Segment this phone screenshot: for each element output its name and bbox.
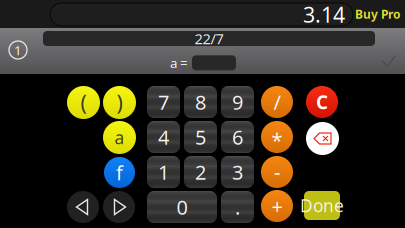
button[interactable]: ( xyxy=(67,86,100,119)
staticText: * xyxy=(271,127,282,153)
staticText: + xyxy=(271,193,282,219)
staticText: 8 xyxy=(195,89,206,115)
staticText: 7 xyxy=(158,89,169,115)
staticText: 3 xyxy=(232,159,243,185)
button[interactable]: C xyxy=(306,86,338,118)
staticText: / xyxy=(273,89,280,115)
staticText: . xyxy=(235,194,240,220)
button[interactable]: 0 xyxy=(147,191,217,223)
staticText: 9 xyxy=(232,89,243,115)
button[interactable] xyxy=(192,55,236,70)
button[interactable]: * xyxy=(261,121,293,153)
staticText: ) xyxy=(116,88,122,117)
staticText: 2 xyxy=(195,159,206,185)
button[interactable]: 5 xyxy=(184,121,217,153)
staticText: 0 xyxy=(176,194,187,220)
button[interactable]: + xyxy=(261,190,293,222)
staticText: 4 xyxy=(158,124,169,150)
button[interactable]: Move right xyxy=(103,191,135,223)
button[interactable]: 1 xyxy=(9,41,27,59)
button[interactable]: Move left xyxy=(67,191,99,223)
button[interactable]: Delete xyxy=(306,122,339,155)
staticText: Done xyxy=(300,194,344,217)
button[interactable]: 7 xyxy=(147,86,180,118)
staticText: 5 xyxy=(195,124,206,150)
staticText: - xyxy=(274,159,280,185)
button[interactable]: - xyxy=(261,156,293,188)
staticText: 22/7 xyxy=(194,29,223,48)
button[interactable]: 1 xyxy=(147,156,180,188)
button[interactable]: f xyxy=(104,157,135,188)
button[interactable]: ) xyxy=(103,86,136,119)
button[interactable]: a xyxy=(103,121,136,154)
button[interactable]: Buy Pro xyxy=(354,0,402,28)
button[interactable]: Done xyxy=(304,191,340,220)
staticText: 1 xyxy=(14,41,22,59)
button[interactable]: Confirm xyxy=(376,48,402,74)
button[interactable]: 4 xyxy=(147,121,180,153)
button[interactable]: 22/7 xyxy=(43,31,375,46)
button[interactable]: 6 xyxy=(221,121,254,153)
staticText: 6 xyxy=(232,124,243,150)
button[interactable]: 3 xyxy=(221,156,254,188)
button[interactable]: / xyxy=(261,86,293,118)
staticText: f xyxy=(116,159,123,186)
staticText: 3.14 xyxy=(303,0,345,29)
staticText: ( xyxy=(80,88,86,117)
staticText: Buy Pro xyxy=(355,6,401,22)
button[interactable]: 3.14 xyxy=(50,3,353,26)
staticText: a xyxy=(114,126,124,149)
button[interactable]: . xyxy=(221,191,254,223)
staticText: 1 xyxy=(158,159,169,185)
button[interactable]: 8 xyxy=(184,86,217,118)
button[interactable]: 2 xyxy=(184,156,217,188)
staticText: a = xyxy=(170,54,188,72)
button[interactable]: 9 xyxy=(221,86,254,118)
staticText: C xyxy=(316,90,328,114)
